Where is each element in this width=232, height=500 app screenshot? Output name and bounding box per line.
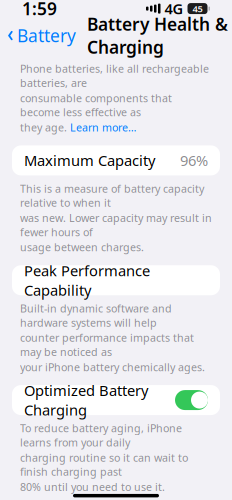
staticText: 4G	[164, 0, 183, 18]
staticText: This is a measure of battery capacity re…	[20, 181, 204, 210]
staticText: Phone batteries, like all rechargeable b…	[20, 62, 209, 90]
staticText: usage between charges.	[20, 240, 144, 254]
staticText: Battery	[17, 24, 76, 47]
staticText: your iPhone battery chemically ages.	[20, 360, 205, 374]
staticText: Peak Performance Capability	[24, 261, 150, 300]
staticText: 45	[192, 2, 202, 15]
staticText: 96%	[180, 151, 208, 170]
staticText: consumable components that become less e…	[20, 91, 172, 119]
staticText: To reduce battery aging, iPhone learns f…	[20, 421, 182, 449]
button[interactable]: Battery	[0, 20, 76, 51]
staticText: Built-in dynamic software and hardware s…	[20, 301, 172, 329]
button[interactable]: Optimized Battery Charging	[12, 385, 220, 415]
staticText: 1:59	[22, 0, 57, 20]
staticText: counter performance impacts that may be …	[20, 331, 194, 359]
staticText: Maximum Capacity	[24, 151, 155, 170]
staticText: Learn more…	[70, 120, 136, 134]
staticText: was new. Lower capacity may result in fe…	[20, 211, 212, 239]
staticText: Battery Health & Charging	[87, 13, 228, 59]
staticText: 80% until you need to use it.	[20, 480, 165, 494]
staticText: Optimized Battery Charging	[24, 381, 148, 420]
staticText: they age.	[20, 120, 67, 134]
button[interactable]: Peak Performance Capability	[12, 265, 220, 295]
staticText: charging routine so it can wait to finis…	[20, 450, 188, 479]
button[interactable]: Learn more…	[70, 120, 136, 134]
button[interactable]: Maximum Capacity	[12, 145, 220, 175]
